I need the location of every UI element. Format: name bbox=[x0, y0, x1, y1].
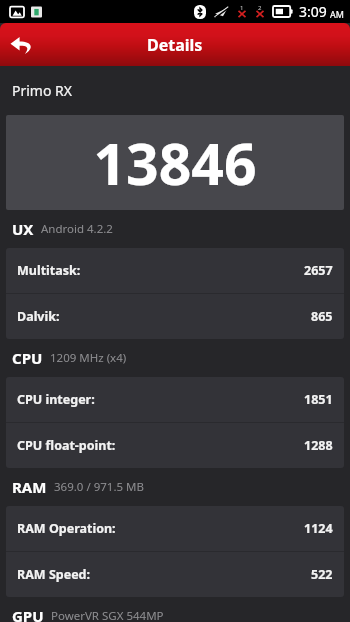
staticText: 369.0 / 971.5 MB bbox=[54, 479, 144, 495]
staticText: 1209 MHz (x4) bbox=[50, 350, 127, 366]
staticText: Details bbox=[147, 34, 203, 56]
staticText: 1124 bbox=[304, 520, 333, 537]
staticText: RAM Operation: bbox=[17, 520, 116, 537]
button[interactable]: Back bbox=[0, 23, 44, 66]
staticText: CPU bbox=[12, 348, 43, 368]
staticText: Dalvik: bbox=[17, 308, 60, 325]
staticText: UX bbox=[12, 219, 34, 239]
staticText: Android 4.2.2 bbox=[41, 221, 113, 237]
staticText: 1288 bbox=[304, 437, 333, 454]
staticText: 2657 bbox=[304, 262, 333, 279]
staticText: Primo RX bbox=[12, 81, 72, 100]
staticText: 1851 bbox=[304, 391, 333, 408]
button[interactable]: CPU float-point: bbox=[6, 423, 344, 468]
staticText: 1 bbox=[240, 4, 244, 12]
button[interactable]: CPU integer: bbox=[6, 377, 344, 422]
staticText: 2 bbox=[258, 4, 262, 12]
staticText: RAM bbox=[12, 477, 47, 497]
button[interactable]: Dalvik: bbox=[6, 294, 344, 339]
staticText: RAM Speed: bbox=[17, 566, 91, 583]
staticText: AM bbox=[330, 8, 344, 20]
staticText: 13846 bbox=[93, 124, 257, 202]
button[interactable]: RAM Speed: bbox=[6, 552, 344, 597]
staticText: PowerVR SGX 544MP bbox=[51, 608, 164, 622]
staticText: CPU float-point: bbox=[17, 437, 116, 454]
staticText: 865 bbox=[311, 308, 333, 325]
staticText: CPU integer: bbox=[17, 391, 95, 408]
staticText: Multitask: bbox=[17, 262, 81, 279]
staticText: GPU bbox=[12, 606, 44, 622]
staticText: 522 bbox=[311, 566, 333, 583]
button[interactable]: Multitask: bbox=[6, 248, 344, 293]
button[interactable]: RAM Operation: bbox=[6, 506, 344, 551]
staticText: 3:09 bbox=[299, 2, 327, 21]
